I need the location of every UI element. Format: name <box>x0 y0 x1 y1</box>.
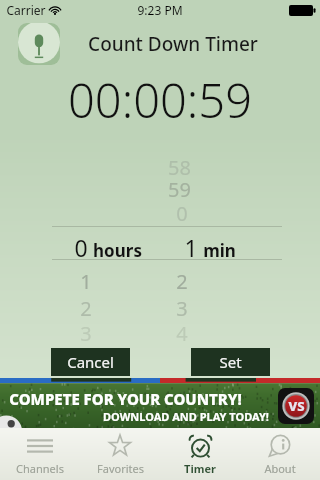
button[interactable]: Favorites <box>80 428 160 480</box>
button[interactable]: Timer <box>160 428 240 480</box>
staticText: 3 <box>80 320 92 347</box>
staticText: 0 <box>74 232 88 263</box>
button[interactable]: Channels <box>0 428 80 480</box>
staticText: 00:00:59 <box>68 68 252 128</box>
staticText: 2 <box>176 268 188 295</box>
staticText: 2 <box>80 295 92 322</box>
staticText: Count Down Timer <box>88 31 258 57</box>
staticText: 1 <box>184 232 198 263</box>
staticText: DOWNLOAD AND PLAY TODAY! <box>103 409 269 424</box>
staticText: Timer <box>184 461 216 476</box>
staticText: VS <box>288 397 305 415</box>
staticText: Cancel <box>67 352 114 372</box>
staticText: 4 <box>176 320 188 347</box>
staticText: 0 <box>176 200 188 227</box>
staticText: min <box>203 239 236 262</box>
button[interactable]: Advertisement: Compete for your country <box>0 378 320 430</box>
staticText: 1 <box>80 268 92 295</box>
staticText: hours <box>93 239 142 262</box>
staticText: Carrier <box>6 2 46 18</box>
staticText: 3 <box>176 295 188 322</box>
staticText: Favorites <box>97 461 144 476</box>
button[interactable]: Cancel <box>51 348 130 376</box>
staticText: Set <box>219 352 242 372</box>
staticText: 58 <box>168 154 191 181</box>
button[interactable]: About <box>240 428 320 480</box>
staticText: Channels <box>16 461 64 476</box>
staticText: 9:23 PM <box>137 2 183 18</box>
button[interactable]: Set <box>191 348 270 376</box>
staticText: About <box>264 461 296 476</box>
staticText: 59 <box>168 176 191 203</box>
staticText: COMPETE FOR YOUR COUNTRY! <box>9 389 242 409</box>
